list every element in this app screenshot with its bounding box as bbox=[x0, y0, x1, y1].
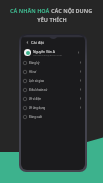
staticText: YÊU THÍCH bbox=[37, 16, 67, 23]
staticText: Điều khoản sử bbox=[29, 88, 48, 92]
staticText: Lịch sử giao bbox=[29, 79, 45, 83]
staticText: Đăng ký bbox=[29, 61, 40, 65]
button[interactable]: Back bbox=[21, 39, 85, 46]
button[interactable]: Điều khoản sử bbox=[21, 85, 85, 94]
staticText: Về ứng dụng bbox=[29, 106, 46, 110]
staticText: CÁC NỘI DUNG bbox=[51, 7, 93, 14]
button[interactable]: Đăng ký bbox=[21, 58, 85, 67]
staticText: Nguyễn Văn A bbox=[33, 49, 55, 53]
staticText: Cài đặt bbox=[31, 40, 44, 45]
button[interactable]: Nguyễn Văn A bbox=[21, 47, 85, 58]
button[interactable]: Về ví điện bbox=[21, 94, 85, 103]
staticText: Hồ sơ bbox=[29, 70, 37, 74]
staticText: nguyenvana@gmail.com bbox=[33, 53, 63, 56]
other: Back bbox=[26, 41, 29, 44]
staticText: Đăng xuất bbox=[29, 115, 43, 119]
staticText: Về ví điện bbox=[29, 97, 42, 101]
button[interactable]: Đăng xuất bbox=[21, 112, 85, 121]
button[interactable]: Hồ sơ bbox=[21, 67, 85, 76]
button[interactable]: Lịch sử giao bbox=[21, 76, 85, 85]
button[interactable]: Về ứng dụng bbox=[21, 103, 85, 112]
staticText: CÁ NHÂN HOÁ bbox=[10, 7, 51, 14]
